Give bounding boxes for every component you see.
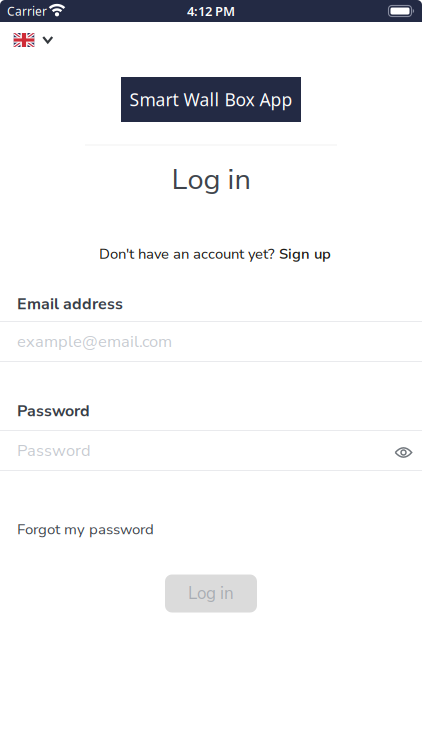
button[interactable] xyxy=(10,29,56,51)
staticText: Log in xyxy=(188,582,234,605)
staticText: Forgot my password xyxy=(17,519,154,540)
staticText: example@email.com xyxy=(17,330,172,353)
staticText: Don't have an account yet? Sign up xyxy=(99,244,331,264)
button[interactable]: Log in xyxy=(165,574,257,612)
button[interactable] xyxy=(388,437,418,467)
staticText: Password xyxy=(17,439,91,462)
staticText: 4:12 PM xyxy=(187,2,235,20)
staticText: Smart Wall Box App xyxy=(129,88,292,111)
staticText: Carrier xyxy=(7,3,47,19)
button[interactable]: Forgot my password xyxy=(17,518,405,540)
staticText: Log in xyxy=(171,160,250,199)
staticText: Password xyxy=(17,400,90,422)
staticText: Email address xyxy=(17,293,123,315)
button[interactable]: Don't have an account yet? Sign up xyxy=(99,243,331,265)
button[interactable]: Password xyxy=(17,431,405,470)
button[interactable]: example@email.com xyxy=(17,322,405,361)
